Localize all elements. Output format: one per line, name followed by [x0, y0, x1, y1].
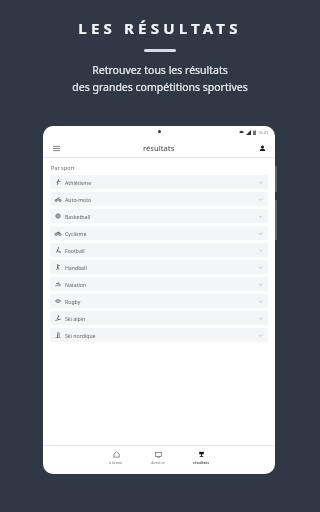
staticText: 16:41: [258, 130, 269, 135]
staticText: Basketball: [65, 213, 91, 220]
staticText: Auto-moto: [65, 196, 92, 203]
staticText: résultats: [193, 460, 209, 465]
staticText: Ski nordique: [65, 332, 96, 339]
button[interactable]: Ski nordique: [50, 328, 268, 342]
button[interactable]: résultats: [190, 450, 212, 466]
button[interactable]: direct tv: [148, 450, 168, 466]
staticText: résultats: [143, 143, 175, 153]
staticText: Ski alpin: [65, 315, 86, 322]
button[interactable]: Natation: [50, 277, 268, 291]
staticText: des grandes compétitions sportives: [72, 80, 248, 94]
staticText: à la une: [109, 460, 123, 465]
button[interactable]: Cyclisme: [50, 226, 268, 240]
button[interactable]: Menu: [50, 142, 62, 154]
staticText: Retrouvez tous les résultats: [92, 63, 228, 77]
button[interactable]: Auto-moto: [50, 192, 268, 206]
staticText: Athlétisme: [65, 179, 92, 186]
staticText: Par sport: [51, 164, 75, 171]
button[interactable]: à la une: [106, 450, 126, 466]
button[interactable]: Handball: [50, 260, 268, 274]
staticText: Natation: [65, 281, 87, 288]
staticText: Football: [65, 247, 85, 254]
staticText: LES RÉSULTATS: [78, 18, 242, 38]
staticText: Cyclisme: [65, 230, 87, 237]
button[interactable]: Compte: [256, 142, 268, 154]
button[interactable]: Football: [50, 243, 268, 257]
staticText: Handball: [65, 264, 87, 271]
button[interactable]: Ski alpin: [50, 311, 268, 325]
button[interactable]: Rugby: [50, 294, 268, 308]
staticText: direct tv: [151, 460, 165, 465]
button[interactable]: Athlétisme: [50, 175, 268, 189]
staticText: Rugby: [65, 298, 81, 305]
button[interactable]: Basketball: [50, 209, 268, 223]
